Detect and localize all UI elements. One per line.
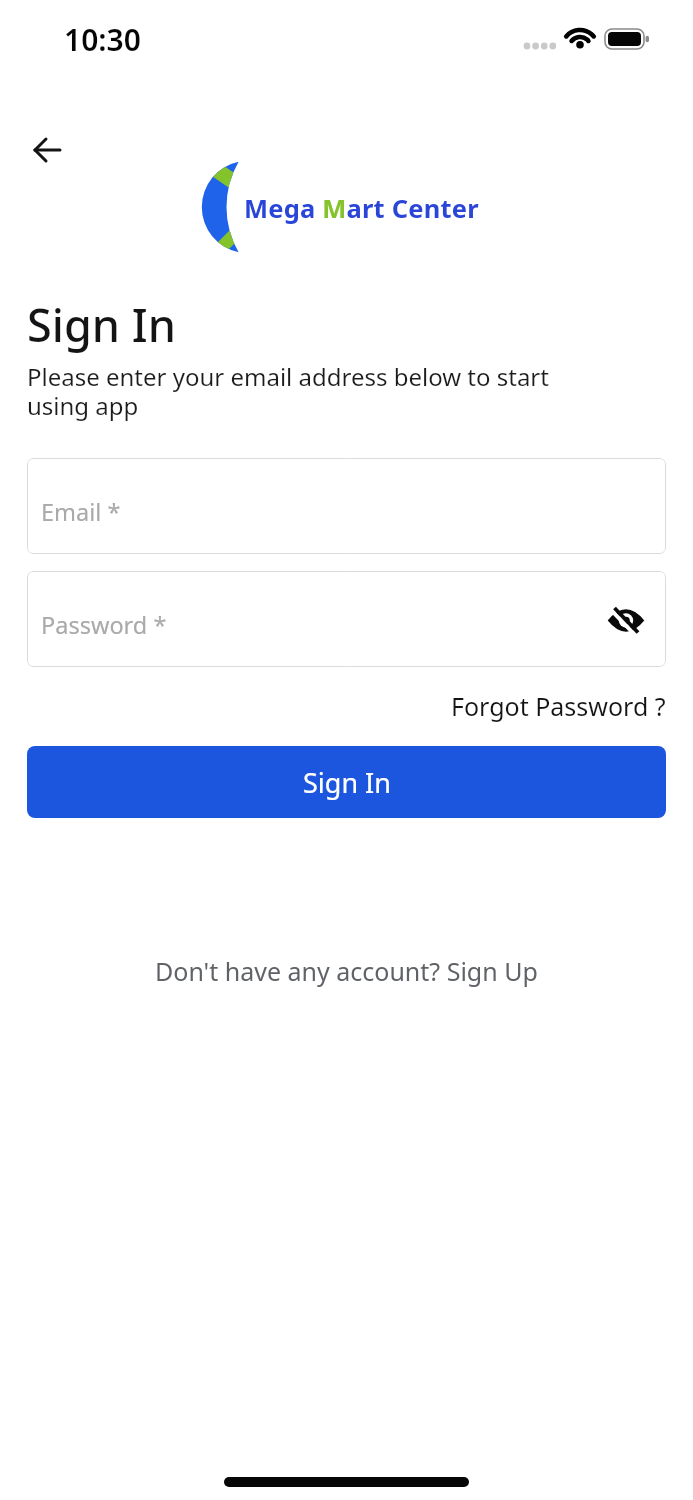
staticText: Don't have any account? Sign Up [155,954,538,988]
staticText: Please enter your email address below to… [27,360,549,422]
button[interactable] [24,130,72,170]
button[interactable]: Forgot Password ? [451,689,666,723]
staticText: Mega Mart Center [244,191,479,226]
staticText: Sign In [27,294,176,355]
staticText: Sign In [303,764,391,801]
button[interactable]: Don't have any account? Sign Up [155,954,538,988]
button[interactable] [606,597,650,641]
staticText: Email * [41,496,121,528]
button[interactable]: Password * [27,571,666,667]
staticText: 10:30 [64,19,141,60]
button[interactable]: Email * [27,458,666,554]
button[interactable]: Sign In [27,746,666,818]
staticText: Forgot Password ? [451,689,666,723]
staticText: Password * [41,609,167,641]
